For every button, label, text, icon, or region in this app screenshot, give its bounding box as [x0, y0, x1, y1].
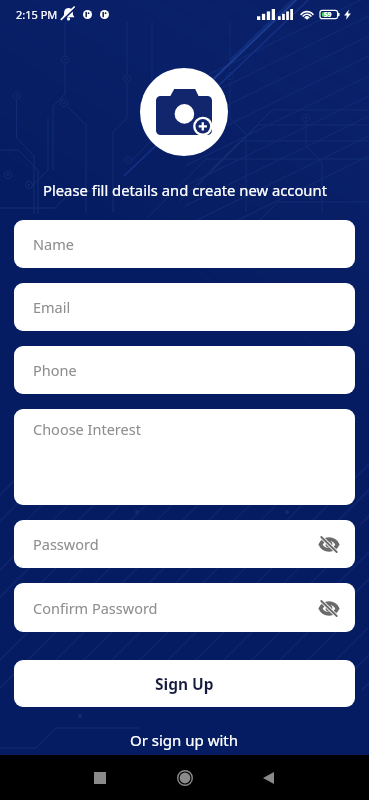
button[interactable]: Choose Interest — [14, 409, 355, 505]
button[interactable]: Toggle password visibility — [317, 596, 341, 620]
button[interactable]: Password — [14, 520, 355, 568]
staticText: Name — [33, 234, 74, 254]
staticText: Email — [33, 297, 71, 317]
staticText: Confirm Password — [33, 598, 158, 618]
button[interactable]: Recents — [84, 762, 116, 794]
button[interactable]: Toggle password visibility — [317, 532, 341, 556]
button[interactable]: Email — [14, 283, 355, 331]
button[interactable]: Name — [14, 220, 355, 268]
staticText: 59 — [324, 10, 332, 19]
staticText: Choose Interest — [33, 419, 141, 439]
staticText: Password — [33, 534, 99, 554]
button[interactable]: Phone — [14, 346, 355, 394]
staticText: Phone — [33, 360, 77, 380]
button[interactable]: Home — [169, 762, 201, 794]
button[interactable]: Confirm Password — [14, 583, 355, 632]
staticText: Please fill details and create new accou… — [43, 180, 327, 200]
button[interactable]: Sign Up — [14, 660, 355, 707]
staticText: Sign Up — [155, 673, 214, 694]
staticText: 2:15 PM — [16, 7, 58, 22]
staticText: Or sign up with — [130, 730, 239, 750]
button[interactable]: Back — [252, 762, 284, 794]
